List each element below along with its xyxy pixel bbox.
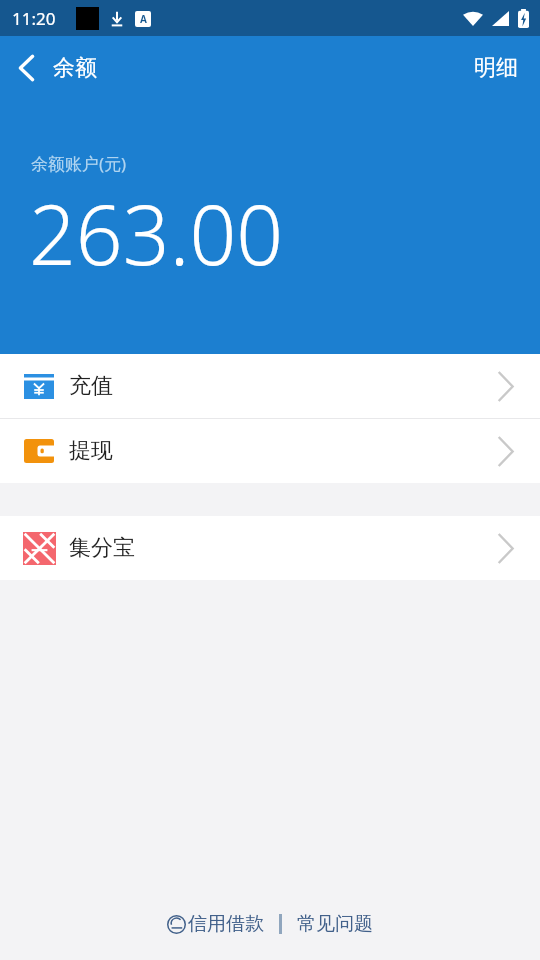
button[interactable]: 集分宝	[0, 516, 540, 580]
staticText: 常见问题	[297, 912, 373, 936]
button[interactable]: 充值	[0, 354, 540, 418]
staticText: 余额	[53, 54, 97, 82]
button[interactable]: Back	[0, 36, 111, 100]
button[interactable]: 信用借款	[163, 908, 268, 940]
staticText: 提现	[69, 437, 113, 465]
staticText: 11:20	[12, 7, 56, 30]
staticText: 集分宝	[69, 534, 135, 562]
staticText: 信用借款	[188, 912, 264, 936]
button[interactable]: 提现	[0, 419, 540, 483]
staticText: 余额账户(元)	[31, 152, 127, 175]
button[interactable]: 常见问题	[293, 908, 377, 940]
staticText: 充值	[69, 372, 113, 400]
staticText: 明细	[474, 54, 518, 82]
staticText: 263.00	[29, 177, 284, 289]
button[interactable]: 明细	[452, 36, 540, 100]
staticText: A	[140, 12, 147, 26]
